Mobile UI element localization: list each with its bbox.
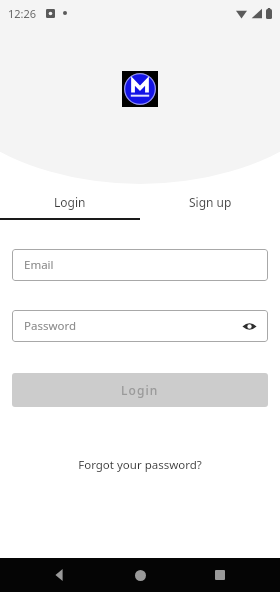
staticText: Email bbox=[24, 257, 258, 273]
button[interactable]: Login bbox=[0, 184, 140, 220]
button[interactable]: Password bbox=[12, 310, 268, 342]
button[interactable]: Recent apps bbox=[200, 558, 240, 592]
button[interactable]: Show password bbox=[240, 317, 258, 335]
button[interactable]: Back bbox=[40, 558, 80, 592]
staticText: Login bbox=[54, 194, 86, 210]
button[interactable]: Home bbox=[120, 558, 160, 592]
button[interactable]: Sign up bbox=[140, 184, 280, 220]
staticText: Sign up bbox=[189, 194, 232, 210]
button[interactable]: Login bbox=[12, 373, 268, 407]
staticText: Password bbox=[24, 318, 240, 334]
button[interactable]: Email bbox=[12, 249, 268, 281]
staticText: Login bbox=[121, 382, 159, 398]
staticText: Forgot your password? bbox=[78, 457, 202, 473]
staticText: 12:26 bbox=[8, 6, 37, 21]
button[interactable]: Forgot your password? bbox=[68, 453, 212, 477]
